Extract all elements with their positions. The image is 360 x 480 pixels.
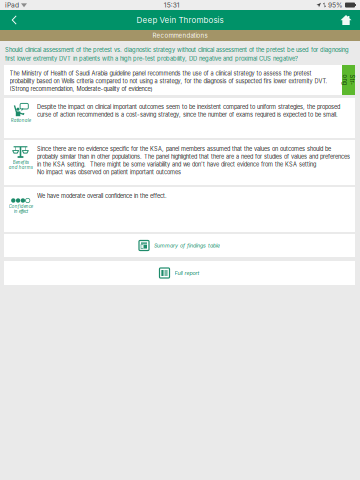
staticText: We have moderate overall confidence in t… <box>37 192 167 199</box>
staticText: Despite the impact on clinical important… <box>37 103 340 118</box>
button[interactable]: Summary of findings table <box>4 234 355 257</box>
staticText: The Ministry of Health of Saudi Arabia g… <box>9 70 327 92</box>
button[interactable]: Back <box>2 10 26 30</box>
staticText: Confidence in effect <box>8 204 32 214</box>
staticText: Summary of findings table <box>154 242 220 249</box>
staticText: Deep Vein Thrombosis <box>136 15 223 25</box>
staticText: 95% <box>328 1 343 9</box>
staticText: Should clinical assessment of the pretes… <box>5 46 349 62</box>
staticText: Rationale <box>10 118 30 123</box>
button[interactable]: Full report <box>4 261 355 285</box>
staticText: Benefits and harms <box>8 160 32 170</box>
staticText: Recommendations <box>152 32 207 39</box>
staticText: Since there are no evidence specific for… <box>37 145 350 176</box>
staticText: iPad <box>5 1 19 9</box>
staticText: 15:31 <box>164 1 180 9</box>
staticText: Full report <box>174 270 199 276</box>
button[interactable]: Home <box>334 10 358 30</box>
staticText: Strong <box>343 73 354 87</box>
